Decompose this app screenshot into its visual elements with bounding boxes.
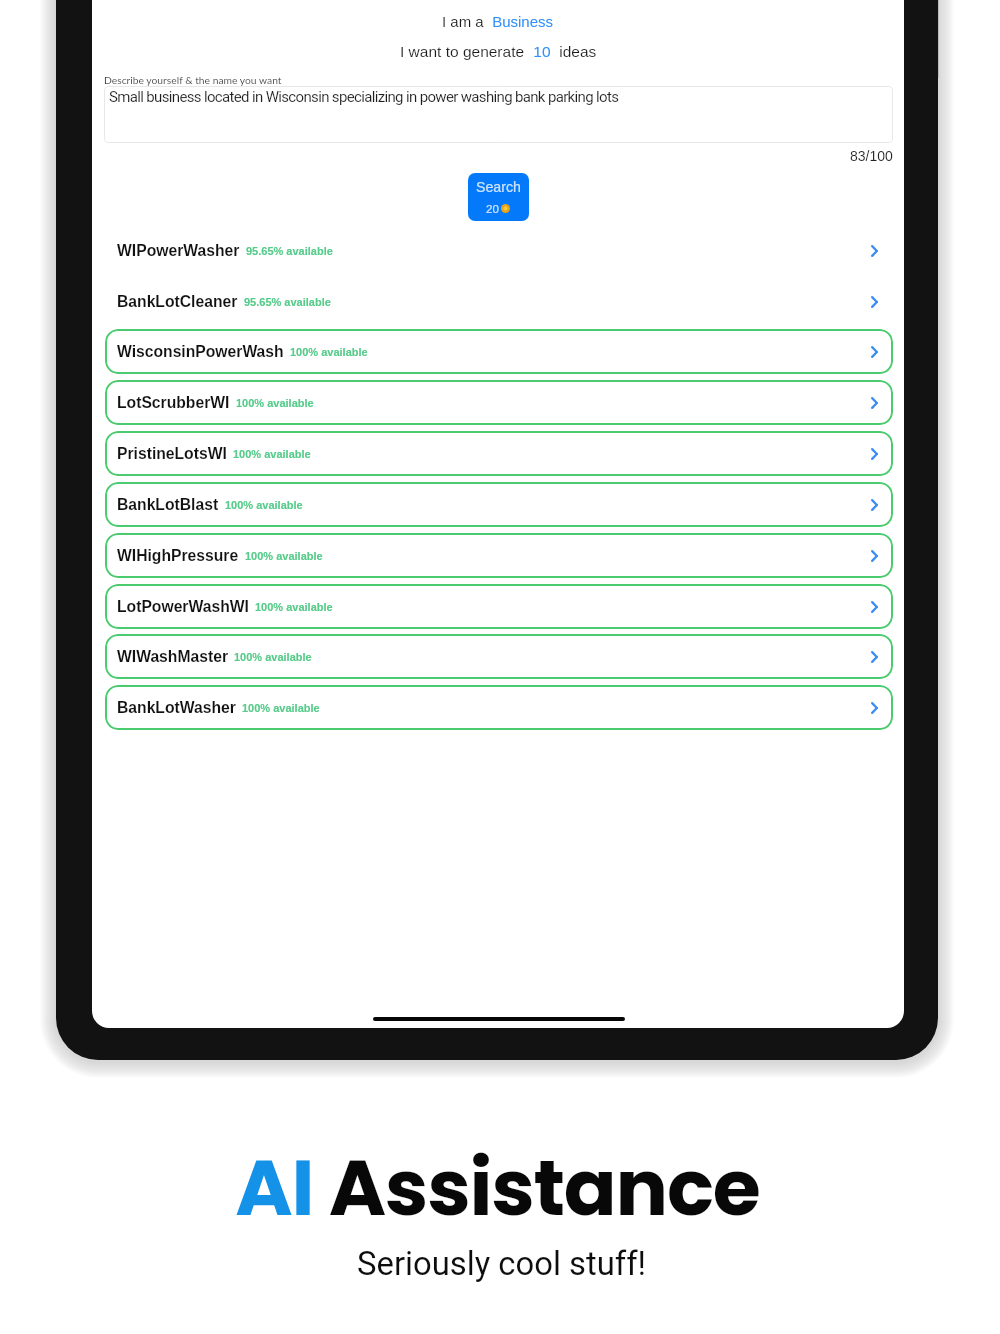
staticText: WIPowerWasher [117, 242, 240, 260]
staticText: 83/100 [850, 148, 893, 164]
button[interactable]: Search, costs 20 credits [468, 173, 529, 221]
staticText: Seriously cool stuff! [357, 1245, 646, 1283]
staticText: WIHighPressure [117, 547, 239, 565]
other: Open name details [871, 651, 878, 663]
staticText: 20 [486, 202, 499, 215]
staticText: BankLotBlast [117, 496, 219, 514]
staticText: ideas [555, 43, 597, 60]
other: Open name details [871, 245, 878, 257]
staticText: 95.65% available [244, 296, 331, 308]
button[interactable]: BankLotCleaner [105, 279, 893, 324]
staticText: I want to generate [400, 43, 529, 60]
staticText: 100% available [236, 397, 314, 409]
other: Open name details [871, 499, 878, 511]
button[interactable]: WIWashMaster [105, 634, 893, 679]
staticText: 100% available [290, 346, 368, 358]
button[interactable]: PristineLotsWI [105, 431, 893, 476]
staticText: BankLotCleaner [117, 293, 238, 311]
staticText: Small business located in Wisconsin spec… [109, 88, 619, 106]
staticText: I am a [442, 13, 488, 30]
staticText: 100% available [245, 550, 323, 562]
staticText: WisconsinPowerWash [117, 343, 284, 361]
staticText: 100% available [255, 601, 333, 613]
button[interactable]: 10 [529, 43, 555, 60]
other: Open name details [871, 702, 878, 714]
other: Open name details [871, 601, 878, 613]
staticText: LotPowerWashWI [117, 598, 249, 616]
staticText: WIWashMaster [117, 648, 228, 666]
staticText: Describe yourself & the name you want [104, 74, 282, 86]
other: Open name details [871, 346, 878, 358]
staticText: 95.65% available [246, 245, 333, 257]
button[interactable]: LotScrubberWI [105, 380, 893, 425]
staticText: PristineLotsWI [117, 445, 227, 463]
staticText: LotScrubberWI [117, 394, 230, 412]
button[interactable]: Business [488, 13, 554, 30]
button[interactable]: Small business located in Wisconsin spec… [104, 86, 893, 143]
button[interactable]: BankLotWasher [105, 685, 893, 730]
staticText: 100% available [234, 651, 312, 663]
staticText: 100% available [242, 702, 320, 714]
other: Open name details [871, 397, 878, 409]
other: Open name details [871, 550, 878, 562]
staticText: 100% available [225, 499, 303, 511]
button[interactable]: WIPowerWasher [105, 228, 893, 273]
staticText: 100% available [233, 448, 311, 460]
other: Open name details [871, 448, 878, 460]
other: Open name details [871, 296, 878, 308]
button[interactable]: BankLotBlast [105, 482, 893, 527]
button[interactable]: WisconsinPowerWash [105, 329, 893, 374]
button[interactable]: WIHighPressure [105, 533, 893, 578]
staticText: AI Assistance [235, 1133, 760, 1242]
button[interactable]: LotPowerWashWI [105, 584, 893, 629]
staticText: BankLotWasher [117, 699, 236, 717]
staticText: Search [476, 179, 521, 195]
